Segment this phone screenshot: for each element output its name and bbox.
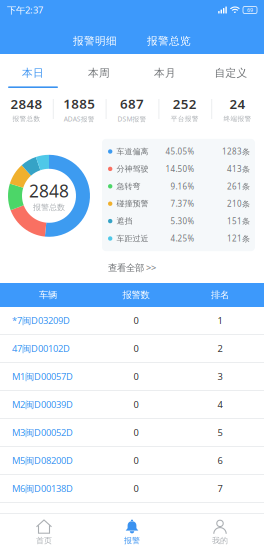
button[interactable]: 本周 [66, 54, 132, 88]
staticText: 687 [120, 95, 144, 112]
staticText: 1 [217, 314, 222, 327]
button[interactable]: 本月 [132, 54, 198, 88]
staticText: 2848 [10, 95, 42, 113]
staticText: 14.50% [165, 164, 194, 174]
button[interactable]: 报警明细 [69, 30, 121, 52]
staticText: 2 [217, 342, 222, 355]
staticText: 分神驾驶 [116, 164, 148, 174]
staticText: 本日 [22, 66, 44, 79]
staticText: 0 [133, 454, 138, 467]
staticText: 1885 [63, 95, 95, 112]
staticText: 自定义 [214, 66, 247, 79]
staticText: 1283条 [222, 146, 250, 157]
button[interactable]: 首页 [0, 514, 88, 550]
staticText: 4.25% [170, 233, 194, 244]
staticText: 报警数 [122, 289, 149, 301]
staticText: 9.16% [170, 181, 194, 192]
staticText: 210条 [227, 198, 250, 209]
staticText: 3 [217, 370, 222, 383]
staticText: 69 [247, 6, 253, 14]
staticText: M6闽D00138D [12, 482, 73, 495]
staticText: 151条 [227, 216, 250, 226]
staticText: 0 [133, 426, 138, 439]
staticText: 碰撞预警 [116, 199, 148, 209]
staticText: 车辆 [39, 289, 57, 301]
staticText: 2848 [29, 179, 69, 202]
staticText: M2闽D00039D [12, 398, 73, 411]
staticText: 7 [217, 482, 222, 495]
staticText: 5 [217, 426, 222, 439]
staticText: 0 [133, 370, 138, 383]
staticText: 24 [230, 95, 246, 113]
staticText: 遮挡 [116, 216, 132, 226]
staticText: 首页 [36, 536, 52, 545]
staticText: 0 [133, 398, 138, 411]
staticText: 47闽D00102D [12, 342, 70, 355]
staticText: 下午2:37 [7, 4, 43, 16]
staticText: 本周 [88, 66, 110, 79]
button[interactable]: 报警 [88, 514, 176, 550]
staticText: 261条 [227, 181, 250, 192]
staticText: 0 [133, 482, 138, 495]
staticText: 0 [133, 314, 138, 327]
staticText: 本月 [154, 66, 176, 79]
staticText: *7闽D03209D [12, 314, 70, 327]
staticText: ADAS报警 [64, 114, 95, 123]
staticText: 急转弯 [116, 181, 140, 191]
staticText: 5.30% [170, 216, 194, 226]
staticText: 平台报警 [171, 115, 199, 123]
staticText: 7.37% [170, 198, 194, 209]
staticText: 排名 [211, 289, 229, 301]
staticText: M1闽D00057D [12, 370, 73, 383]
staticText: 我的 [212, 536, 228, 545]
staticText: 报警明细 [73, 34, 117, 47]
staticText: 252 [173, 95, 197, 113]
staticText: DSM报警 [117, 114, 146, 123]
staticText: 查看全部 >> [108, 261, 156, 274]
staticText: 413条 [227, 164, 250, 174]
staticText: 终端报警 [224, 115, 252, 123]
button[interactable]: 本日 [0, 54, 66, 88]
button[interactable]: 自定义 [198, 54, 264, 88]
button[interactable]: 报警总览 [143, 30, 195, 52]
staticText: 6 [217, 454, 222, 467]
staticText: 45.05% [165, 146, 194, 157]
staticText: 4 [217, 398, 222, 411]
staticText: 车道偏离 [116, 147, 148, 156]
staticText: 报警总数 [12, 115, 40, 123]
staticText: 报警总数 [33, 202, 65, 212]
staticText: 121条 [227, 233, 250, 244]
staticText: 报警总览 [147, 34, 191, 47]
button[interactable]: 查看全部 >> [0, 252, 264, 283]
staticText: M3闽D00052D [12, 426, 73, 439]
staticText: M5闽D08200D [12, 454, 73, 467]
staticText: 报警 [124, 536, 140, 545]
button[interactable]: 我的 [176, 514, 264, 550]
staticText: 0 [133, 342, 138, 355]
staticText: 车距过近 [116, 234, 148, 243]
